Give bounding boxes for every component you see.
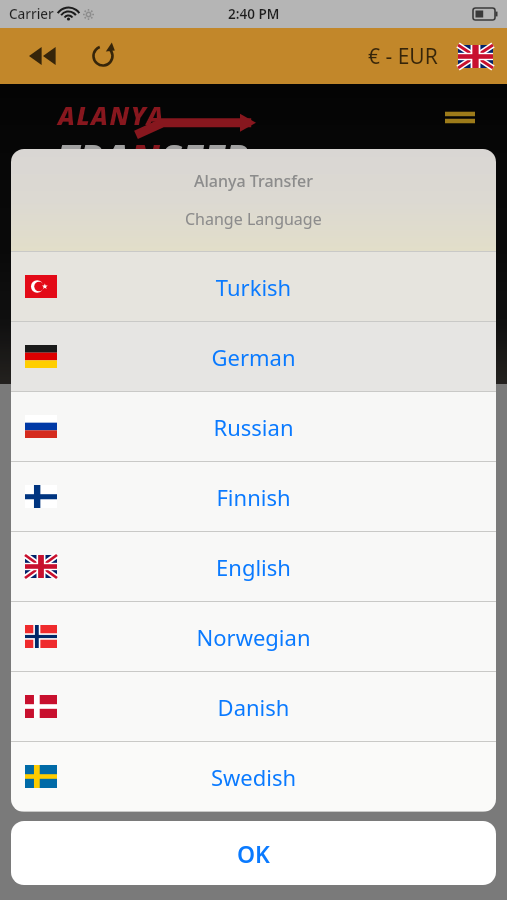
button[interactable]: Menu — [443, 106, 477, 128]
button[interactable]: € - EUR — [364, 34, 442, 79]
button[interactable]: English — [11, 532, 496, 601]
button[interactable]: Turkish — [11, 252, 496, 321]
staticText: N — [130, 132, 161, 184]
staticText: German — [57, 342, 450, 372]
staticText: Swedish — [57, 762, 450, 792]
button[interactable]: Danish — [11, 672, 496, 741]
staticText: English — [57, 552, 450, 582]
button[interactable]: Norwegian — [11, 602, 496, 671]
button[interactable]: Back — [20, 33, 66, 79]
staticText: € - EUR — [368, 42, 438, 71]
button[interactable]: German — [11, 322, 496, 391]
staticText: Russian — [57, 412, 450, 442]
staticText: Carrier — [9, 5, 54, 23]
button[interactable]: OK — [11, 821, 496, 885]
staticText: ALANYA — [58, 98, 165, 132]
staticText: TRA — [58, 132, 130, 184]
staticText: Danish — [57, 692, 450, 722]
button[interactable]: Russian — [11, 392, 496, 461]
staticText: 2:40 PM — [228, 5, 280, 23]
staticText: Finnish — [57, 482, 450, 512]
button[interactable]: Language — [458, 45, 493, 68]
staticText: Alanya Transfer — [194, 170, 314, 192]
staticText: Norwegian — [57, 622, 450, 652]
button[interactable]: Reload — [80, 33, 126, 79]
staticText: Change Language — [185, 208, 322, 230]
staticText: Turkish — [57, 272, 450, 302]
staticText: OK — [237, 838, 270, 869]
staticText: SFER — [161, 132, 250, 184]
button[interactable]: Swedish — [11, 742, 496, 811]
button[interactable]: Finnish — [11, 462, 496, 531]
